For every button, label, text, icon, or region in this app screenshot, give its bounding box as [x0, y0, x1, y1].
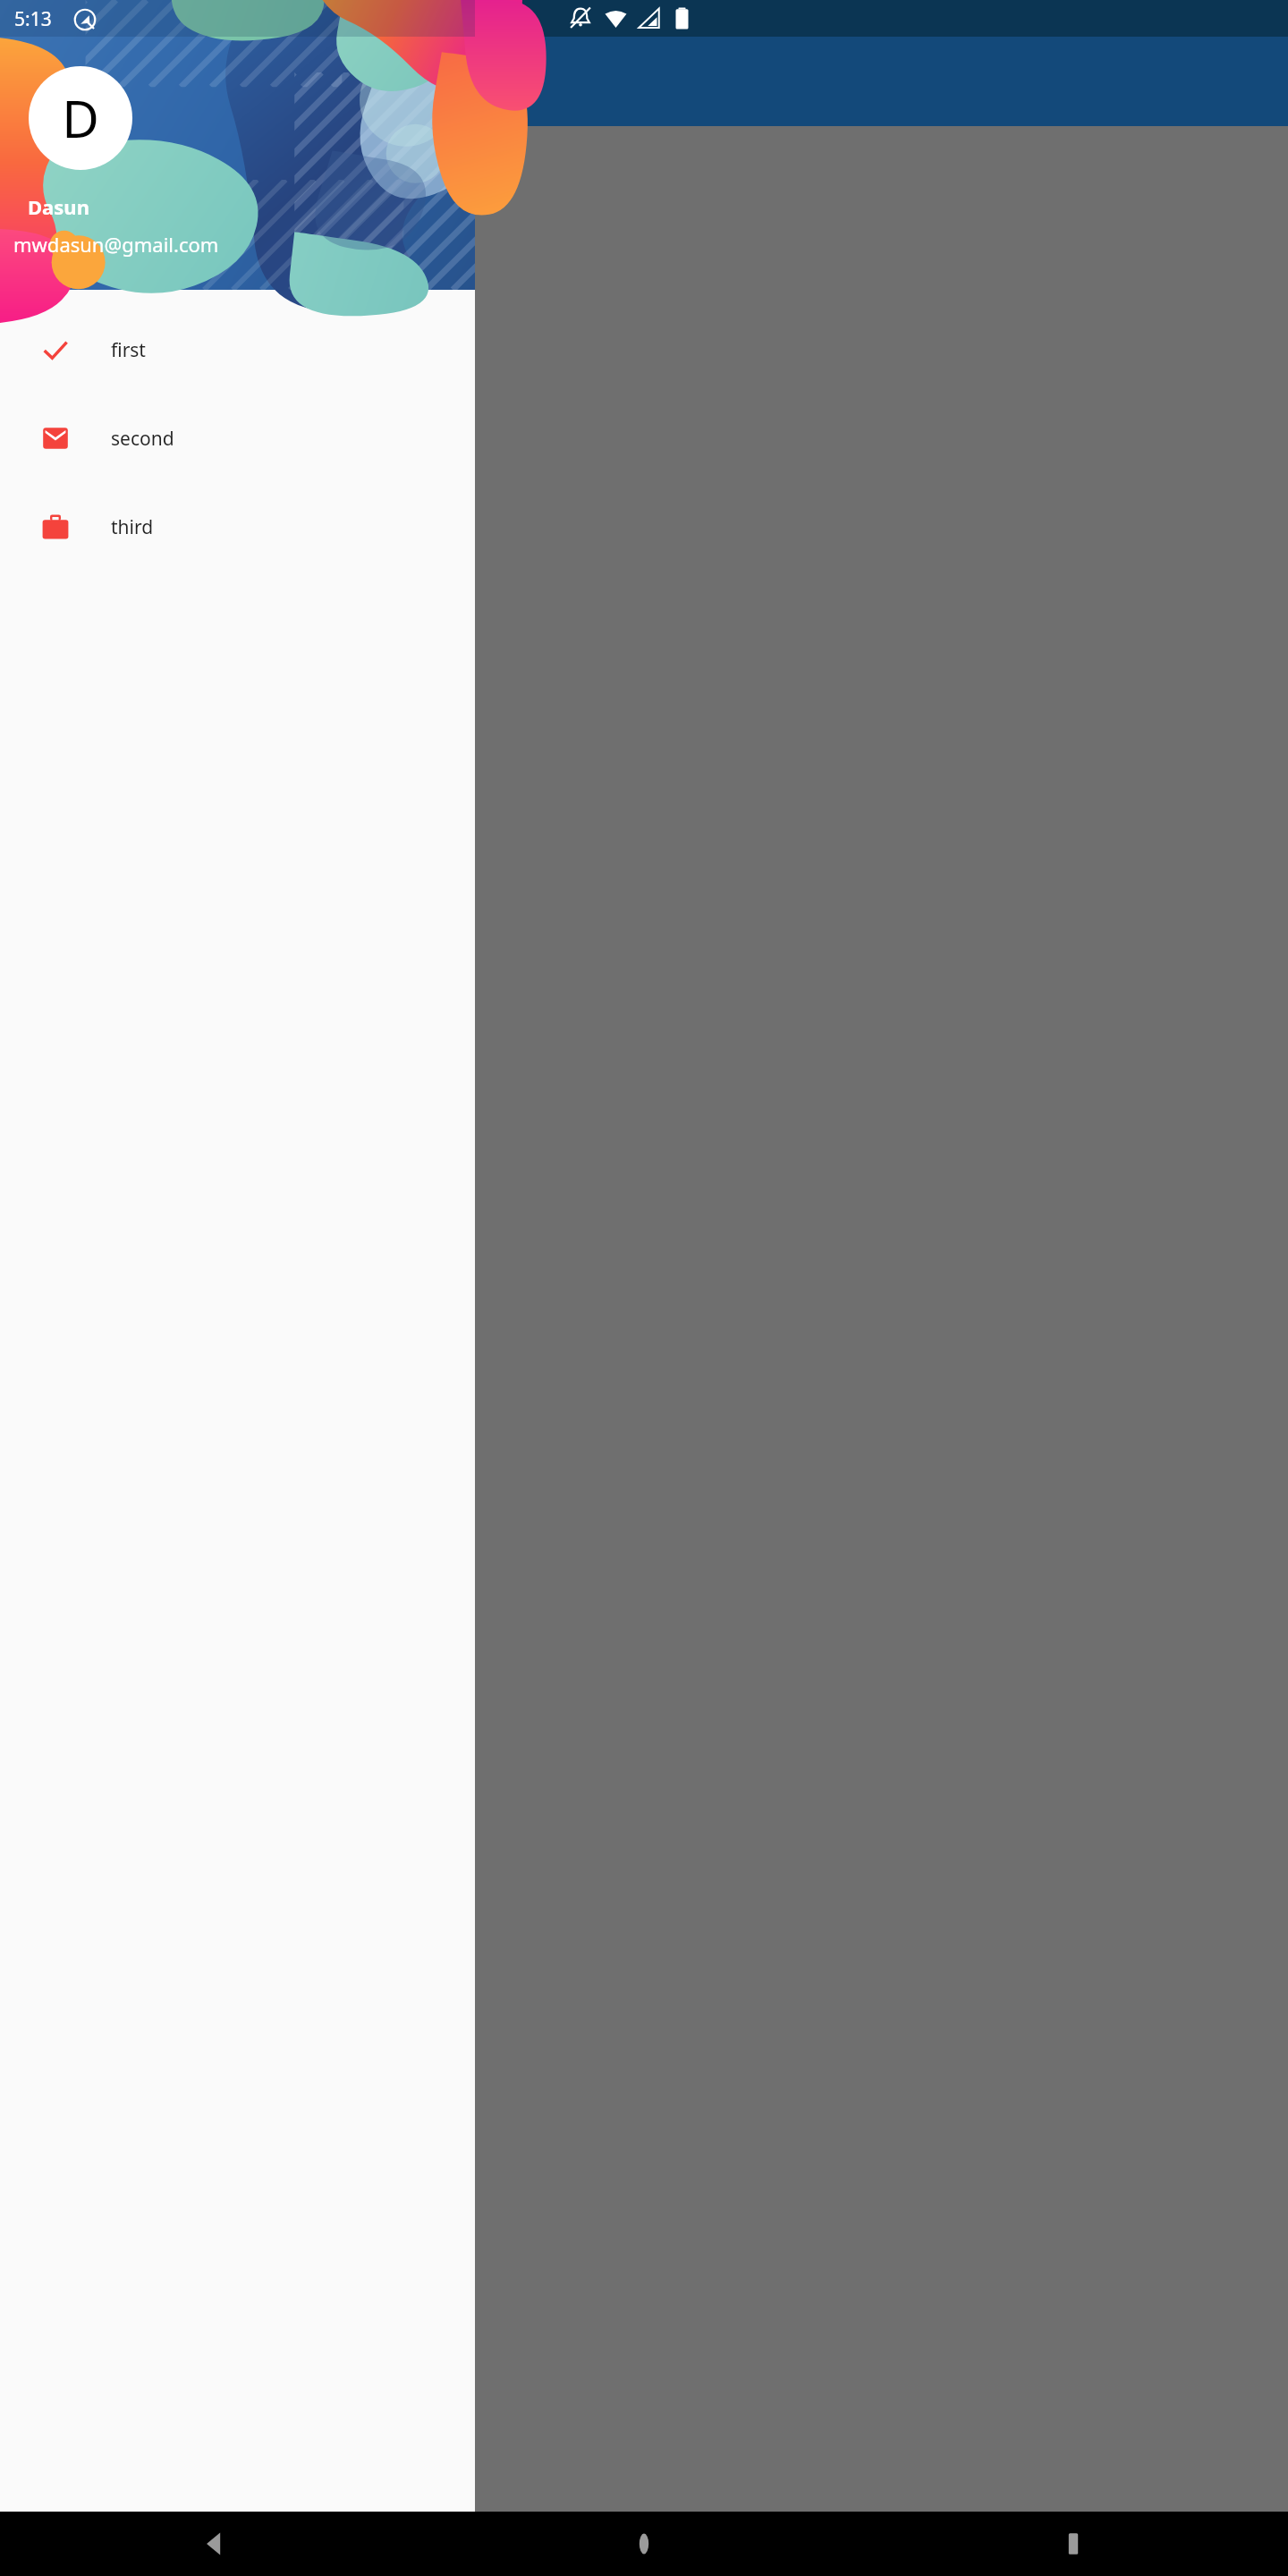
button[interactable]: D — [29, 66, 132, 170]
button[interactable]: Back — [0, 2512, 429, 2576]
staticText: third — [111, 514, 154, 540]
staticText: second — [111, 426, 174, 452]
button[interactable]: third — [0, 482, 475, 571]
staticText: D — [62, 83, 99, 153]
button[interactable]: second — [0, 394, 475, 482]
button[interactable]: Home — [429, 2512, 859, 2576]
staticText: first — [111, 337, 146, 363]
staticText: mwdasun@gmail.com — [13, 231, 219, 258]
staticText: 5:13 — [14, 6, 52, 32]
staticText: Dasun — [28, 193, 89, 220]
button[interactable]: Recent apps — [859, 2512, 1288, 2576]
button[interactable]: first — [0, 305, 475, 394]
